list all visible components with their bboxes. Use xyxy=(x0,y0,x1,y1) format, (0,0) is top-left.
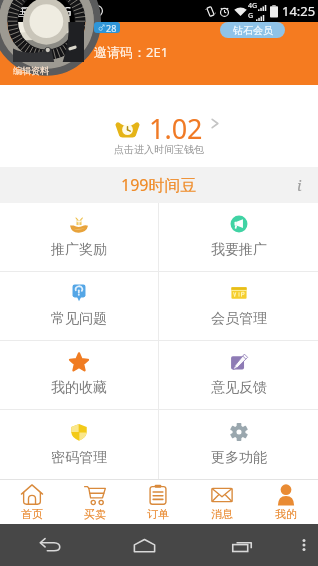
button[interactable]: 我的收藏 xyxy=(0,341,158,409)
button[interactable]: 我要推广 xyxy=(159,203,318,271)
staticText: 中国移动 xyxy=(5,4,53,19)
button[interactable]: Back xyxy=(0,524,96,566)
button[interactable]: 意见反馈 xyxy=(159,341,318,409)
staticText: G xyxy=(248,11,254,21)
staticText: 更多功能 xyxy=(211,449,267,467)
button[interactable]: 会员管理 xyxy=(159,272,318,340)
button[interactable]: 常见问题 xyxy=(0,272,158,340)
staticText: 推广奖励 xyxy=(51,241,107,259)
staticText: 4G xyxy=(56,3,72,19)
button[interactable]: 199时间豆 xyxy=(0,167,318,203)
staticText: 钻石会员 xyxy=(233,24,273,37)
button[interactable]: 我的 xyxy=(254,480,318,524)
staticText: 常见问题 xyxy=(51,310,107,328)
button[interactable]: 推广奖励 xyxy=(0,203,158,271)
staticText: 4G xyxy=(248,1,258,11)
button[interactable]: 订单 xyxy=(126,480,190,524)
button[interactable]: More options xyxy=(290,524,318,566)
button[interactable]: Home xyxy=(96,524,193,566)
staticText: 28 xyxy=(106,22,117,33)
staticText: i xyxy=(297,175,302,195)
staticText: 1.02 xyxy=(149,110,203,147)
button[interactable]: 更多功能 xyxy=(159,410,318,479)
button[interactable]: 钻石会员 xyxy=(220,22,285,38)
staticText: 我的收藏 xyxy=(51,379,107,397)
staticText: 意见反馈 xyxy=(211,379,267,397)
staticText: 点击进入时间宝钱包 xyxy=(114,143,204,156)
button[interactable]: Recents xyxy=(193,524,290,566)
button[interactable]: 买卖 xyxy=(63,480,126,524)
staticText: 订单 xyxy=(147,507,169,521)
staticText: 我要推广 xyxy=(211,241,267,259)
button[interactable]: 1.02 xyxy=(0,85,318,167)
staticText: 14:25 xyxy=(282,2,316,20)
button[interactable]: 消息 xyxy=(190,480,254,524)
staticText: 首页 xyxy=(21,507,43,521)
staticText: 消息 xyxy=(211,507,233,521)
staticText: 买卖 xyxy=(84,507,106,521)
button[interactable]: 密码管理 xyxy=(0,410,158,479)
staticText: 密码管理 xyxy=(51,449,107,467)
staticText: 邀请码：2E1 xyxy=(94,43,169,61)
staticText: 会员管理 xyxy=(211,310,267,328)
button[interactable]: 首页 xyxy=(0,480,63,524)
staticText: 编辑资料 xyxy=(13,65,49,76)
staticText: 199时间豆 xyxy=(121,174,197,196)
button[interactable]: Avatar xyxy=(13,22,84,62)
staticText: 我的 xyxy=(275,507,297,521)
